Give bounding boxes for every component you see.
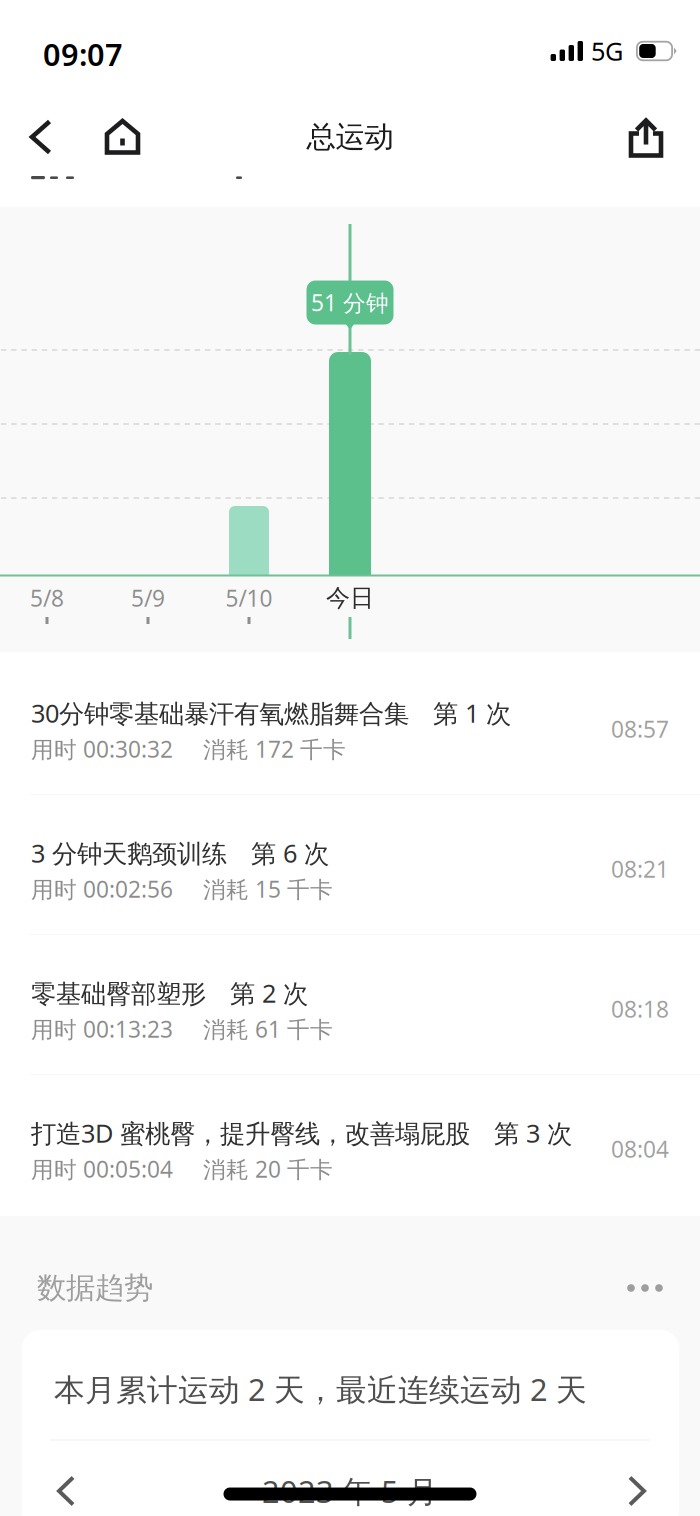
staticText: 08:57 [611, 714, 669, 744]
button[interactable]: 打造3D 蜜桃臀，提升臀线，改善塌屁股 第 3 次 [0, 1075, 700, 1215]
staticText: 5/9 [131, 583, 165, 613]
staticText: 用时 00:05:04 消耗 20 千卡 [31, 1154, 333, 1184]
staticText: 用时 00:13:23 消耗 61 千卡 [31, 1014, 333, 1044]
staticText: 5/10 [225, 583, 272, 613]
staticText: 3 分钟天鹅颈训练 第 6 次 [31, 836, 329, 870]
staticText: 30分钟零基础暴汗有氧燃脂舞合集 第 1 次 [31, 696, 511, 730]
staticText: 今日 [326, 583, 374, 613]
staticText: 本月累计运动 2 天，最近连续运动 2 天 [54, 1369, 587, 1409]
staticText: 5G [591, 34, 623, 68]
staticText: 数据趋势 [37, 1270, 153, 1306]
staticText: 08:21 [611, 854, 669, 884]
staticText: 2023 年 5 月 [262, 1471, 438, 1511]
staticText: 零基础臀部塑形 第 2 次 [31, 976, 308, 1010]
button[interactable]: 3 分钟天鹅颈训练 第 6 次 [0, 795, 700, 935]
button[interactable]: Next month [624, 1470, 650, 1512]
staticText: 用时 00:30:32 消耗 172 千卡 [31, 734, 346, 764]
staticText: 09:07 [43, 34, 123, 74]
staticText: 08:04 [611, 1134, 669, 1164]
button[interactable]: Share [618, 109, 674, 164]
button[interactable]: Previous month [53, 1470, 79, 1512]
button[interactable]: Back [13, 109, 69, 164]
staticText: 打造3D 蜜桃臀，提升臀线，改善塌屁股 第 3 次 [31, 1116, 572, 1150]
staticText: 用时 00:02:56 消耗 15 千卡 [31, 874, 333, 904]
button[interactable]: Home [95, 109, 151, 164]
button[interactable]: 30分钟零基础暴汗有氧燃脂舞合集 第 1 次 [0, 655, 700, 795]
staticText: 5/8 [30, 583, 64, 613]
button[interactable]: More [626, 1273, 664, 1303]
staticText: 08:18 [611, 994, 669, 1024]
button[interactable]: 零基础臀部塑形 第 2 次 [0, 935, 700, 1075]
staticText: 总运动 [306, 119, 393, 155]
staticText: 51 分钟 [311, 287, 389, 317]
